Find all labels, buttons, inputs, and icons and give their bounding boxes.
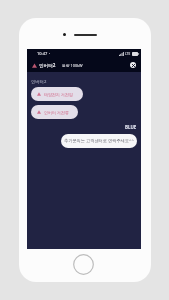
staticText: 10:47	[37, 51, 48, 56]
staticText: BLUE	[125, 124, 137, 130]
button[interactable]: 인버터 저전류	[31, 105, 78, 119]
staticText: 인버터2	[31, 78, 47, 84]
staticText: 태양전지 저전압	[44, 92, 74, 97]
staticText: 인버터2	[39, 62, 56, 68]
staticText: 용량 100kW	[62, 63, 83, 68]
staticText: LTE	[125, 52, 131, 56]
button[interactable]: 추가문의는 고객센터로 연락주세요^^	[61, 134, 137, 148]
button[interactable]: 태양전지 저전압	[31, 87, 83, 101]
staticText: 인버터 저전류	[44, 110, 70, 115]
staticText: 추가문의는 고객센터로 연락주세요^^	[64, 138, 134, 144]
button[interactable]: Close	[130, 62, 136, 68]
